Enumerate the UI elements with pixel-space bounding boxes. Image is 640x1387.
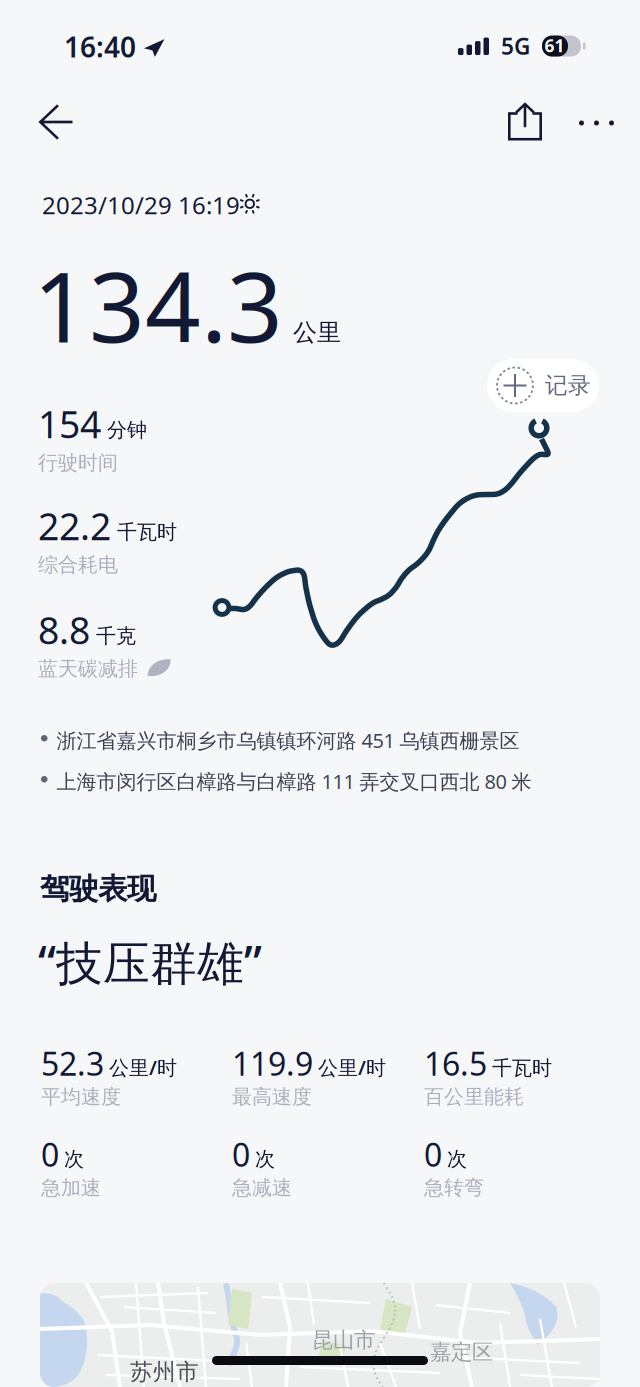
staticText: 公里/时 xyxy=(109,1054,177,1080)
staticText: 22.2 xyxy=(38,501,111,551)
staticText: 154 xyxy=(38,399,101,449)
staticText: 平均速度 xyxy=(41,1084,121,1109)
staticText: 急减速 xyxy=(232,1175,292,1200)
staticText: 公里 xyxy=(293,318,341,347)
staticText: 苏州市 xyxy=(130,1358,199,1386)
staticText: 52.3 xyxy=(41,1042,104,1084)
staticText: 5G xyxy=(501,31,530,61)
staticText: 0 xyxy=(232,1133,250,1175)
staticText: 百公里能耗 xyxy=(424,1084,524,1109)
staticText: 最高速度 xyxy=(232,1084,312,1109)
staticText: “技压群雄” xyxy=(38,931,262,993)
staticText: 浙江省嘉兴市桐乡市乌镇镇环河路 451 乌镇西栅景区 xyxy=(56,727,519,754)
staticText: 昆山市 xyxy=(312,1327,375,1353)
staticText: 次 xyxy=(64,1147,84,1171)
button[interactable]: Trip map xyxy=(40,1283,600,1387)
staticText: 综合耗电 xyxy=(38,553,118,577)
staticText: 驾驶表现 xyxy=(40,871,156,907)
staticText: 蓝天碳减排 xyxy=(38,657,138,681)
button[interactable]: 记录 xyxy=(487,359,599,412)
staticText: 0 xyxy=(424,1133,442,1175)
staticText: 8.8 xyxy=(38,605,90,655)
staticText: 分钟 xyxy=(107,418,147,442)
staticText: 次 xyxy=(255,1147,275,1171)
staticText: 千瓦时 xyxy=(117,520,177,544)
staticText: 0 xyxy=(41,1133,59,1175)
staticText: 千瓦时 xyxy=(492,1056,552,1080)
staticText: 2023/10/29 16:19 xyxy=(42,189,240,221)
staticText: 行驶时间 xyxy=(38,451,118,475)
staticText: 134.3 xyxy=(33,240,283,369)
staticText: 公里/时 xyxy=(318,1054,386,1080)
staticText: 16.5 xyxy=(424,1042,487,1084)
staticText: 61 xyxy=(544,34,564,57)
button[interactable]: Back xyxy=(39,104,74,140)
staticText: 16:40 xyxy=(64,28,136,65)
staticText: 记录 xyxy=(545,372,591,399)
staticText: 急转弯 xyxy=(424,1175,484,1200)
staticText: 急加速 xyxy=(41,1175,101,1200)
staticText: 上海市闵行区白樟路与白樟路 111 弄交叉口西北 80 米 xyxy=(56,768,531,795)
staticText: 嘉定区 xyxy=(430,1339,493,1365)
staticText: 千克 xyxy=(96,624,136,648)
staticText: 次 xyxy=(447,1147,467,1171)
button[interactable]: Share xyxy=(508,103,542,141)
button[interactable]: More options xyxy=(579,104,614,142)
staticText: 119.9 xyxy=(232,1042,313,1084)
